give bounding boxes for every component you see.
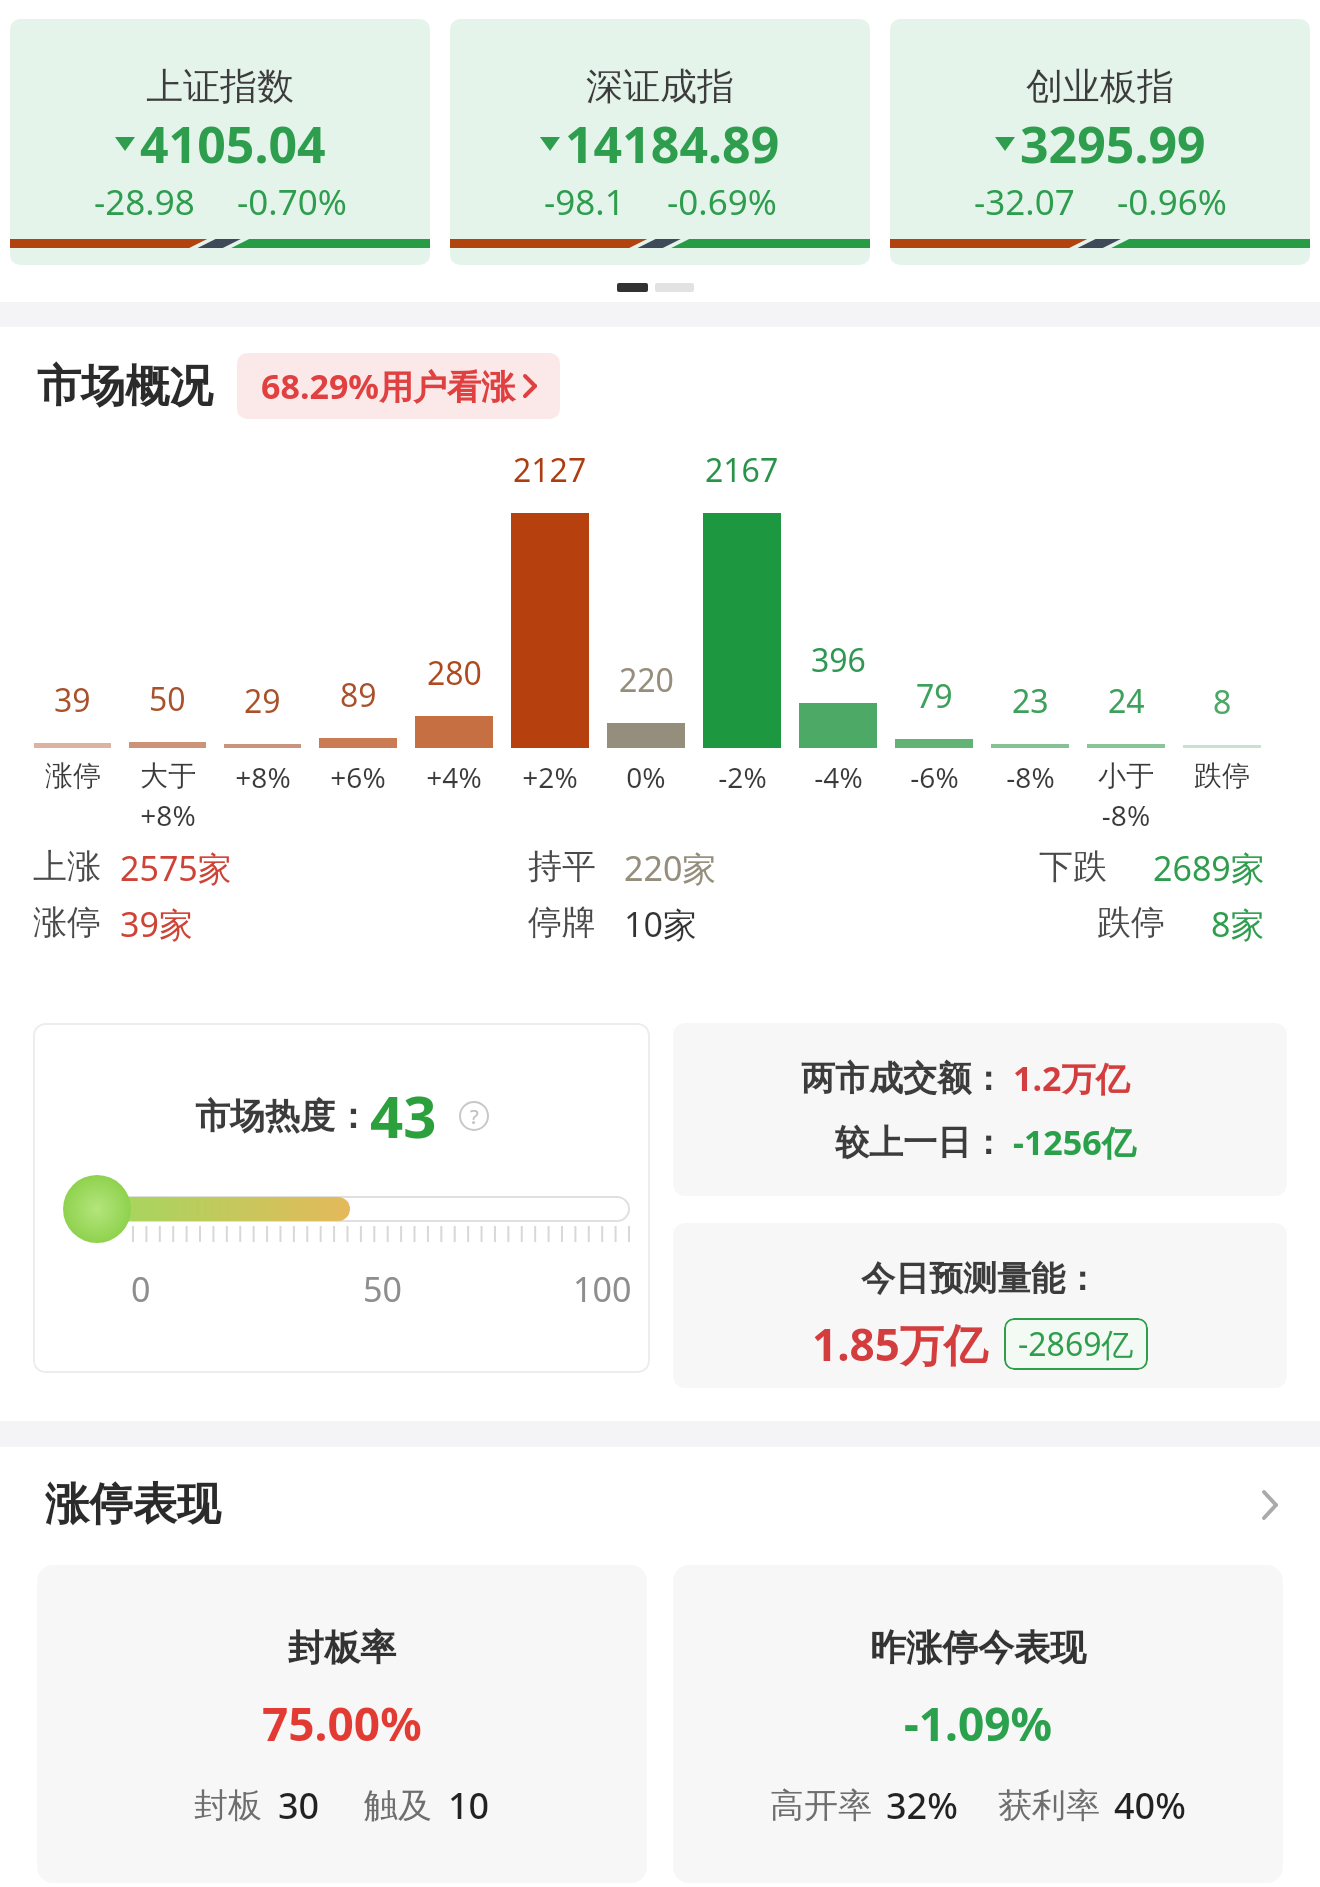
staticText: 4105.04 <box>140 110 326 178</box>
staticText: 220 <box>619 658 674 702</box>
staticText: 上证指数 <box>146 63 294 110</box>
staticText: -8% <box>1006 758 1055 796</box>
staticText: 89 <box>340 673 377 717</box>
staticText: 跌停 <box>1097 901 1165 944</box>
staticText: +2% <box>522 758 578 796</box>
staticText: 75.00% <box>262 1692 422 1755</box>
staticText: -1256亿 <box>1013 1119 1136 1165</box>
staticText: 停牌 <box>528 901 596 944</box>
staticText: -0.69% <box>667 178 777 226</box>
staticText: 深证成指 <box>586 63 734 110</box>
staticText: -1.09% <box>904 1692 1053 1755</box>
staticText: 创业板指 <box>1026 63 1174 110</box>
button[interactable]: 深证成指 <box>450 19 870 265</box>
staticText: 持平 <box>528 845 596 888</box>
staticText: 市场概况 <box>37 359 213 414</box>
staticText: -0.96% <box>1117 178 1227 226</box>
staticText: 30 <box>278 1781 320 1830</box>
staticText: -0.70% <box>237 178 347 226</box>
staticText: 10 <box>448 1781 490 1830</box>
staticText: 220家 <box>624 845 717 891</box>
staticText: 触及 <box>364 1784 432 1827</box>
staticText: 封板率 <box>288 1625 396 1670</box>
staticText: 43 <box>370 1076 437 1155</box>
staticText: 14184.89 <box>565 110 780 178</box>
staticText: 0 <box>131 1266 151 1312</box>
staticText: 两市成交额： <box>801 1057 1005 1100</box>
staticText: 2127 <box>513 448 587 492</box>
button[interactable]: 封板率 <box>37 1565 647 1883</box>
staticText: 高开率 <box>770 1784 872 1827</box>
staticText: 涨停 <box>33 901 101 944</box>
staticText: 79 <box>916 674 953 718</box>
staticText: 市场热度： <box>195 1094 370 1138</box>
staticText: 昨涨停今表现 <box>870 1625 1086 1670</box>
staticText: +8% <box>235 758 291 796</box>
staticText: -4% <box>814 758 863 796</box>
staticText: 上涨 <box>33 845 101 888</box>
staticText: 50 <box>149 677 186 721</box>
staticText: 1.2万亿 <box>1013 1055 1130 1101</box>
staticText: 100 <box>573 1266 632 1312</box>
staticText: 10家 <box>624 901 697 947</box>
button[interactable]: 上证指数 <box>10 19 430 265</box>
staticText: 39 <box>54 678 91 722</box>
staticText: -2% <box>718 758 767 796</box>
staticText: 1.85万亿 <box>812 1314 988 1374</box>
staticText: +4% <box>426 758 482 796</box>
staticText: ? <box>470 1103 479 1130</box>
staticText: 跌停 <box>1194 758 1250 793</box>
staticText: 24 <box>1108 679 1145 723</box>
staticText: -32.07 <box>974 178 1075 226</box>
staticText: 8 <box>1213 680 1232 724</box>
staticText: 68.29%用户看涨 <box>261 363 516 409</box>
button[interactable]: 68.29%用户看涨 <box>237 353 560 419</box>
staticText: 23 <box>1012 679 1049 723</box>
staticText: 涨停 <box>45 758 101 793</box>
button[interactable]: 创业板指 <box>890 19 1310 265</box>
staticText: 小于 -8% <box>1098 758 1154 835</box>
staticText: 0% <box>626 758 666 796</box>
staticText: -98.1 <box>544 178 625 226</box>
button[interactable]: 涨停表现 <box>0 1477 1320 1532</box>
staticText: 涨停表现 <box>45 1477 221 1532</box>
staticText: 396 <box>811 638 866 682</box>
staticText: +6% <box>330 758 386 796</box>
staticText: 280 <box>427 651 482 695</box>
staticText: 32% <box>886 1781 958 1830</box>
staticText: 获利率 <box>998 1784 1100 1827</box>
staticText: 50 <box>363 1266 402 1312</box>
staticText: 2575家 <box>120 845 232 891</box>
staticText: 今日预测量能： <box>861 1257 1099 1300</box>
staticText: 下跌 <box>1039 845 1107 888</box>
staticText: 8家 <box>1211 901 1265 947</box>
staticText: -2869亿 <box>1018 1322 1134 1366</box>
button[interactable]: 市场热度： <box>33 1023 650 1373</box>
button[interactable]: 今日预测量能： <box>673 1223 1287 1388</box>
button[interactable]: 两市成交额： <box>673 1023 1287 1196</box>
staticText: 3295.99 <box>1020 110 1206 178</box>
button[interactable]: 昨涨停今表现 <box>673 1565 1283 1883</box>
staticText: -6% <box>910 758 959 796</box>
staticText: 较上一日： <box>835 1121 1005 1164</box>
staticText: 39家 <box>120 901 193 947</box>
staticText: 40% <box>1114 1781 1186 1830</box>
staticText: 2689家 <box>1153 845 1265 891</box>
staticText: 2167 <box>705 448 779 492</box>
staticText: -28.98 <box>94 178 195 226</box>
staticText: 29 <box>244 679 281 723</box>
staticText: 大于 +8% <box>140 758 196 835</box>
staticText: 封板 <box>194 1784 262 1827</box>
